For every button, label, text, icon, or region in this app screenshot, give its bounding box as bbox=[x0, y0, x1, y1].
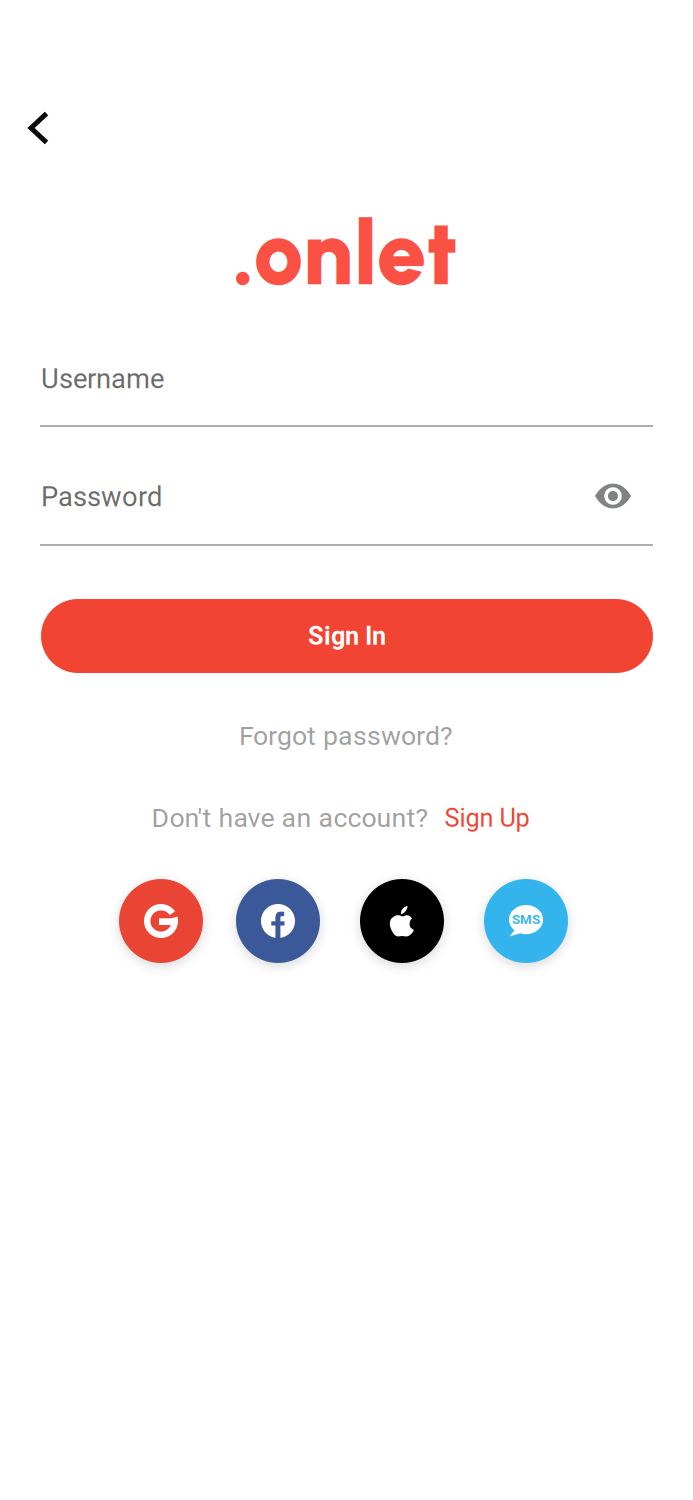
staticText: Don't have an account? bbox=[151, 802, 428, 834]
button[interactable]: Sign Up bbox=[444, 803, 529, 833]
button[interactable]: Sign In bbox=[41, 599, 653, 673]
button[interactable]: Sign in with Facebook bbox=[236, 879, 320, 963]
staticText: Username bbox=[41, 363, 164, 395]
staticText: .onlet bbox=[232, 199, 458, 307]
staticText: Sign Up bbox=[444, 803, 529, 833]
staticText: Password bbox=[41, 481, 162, 513]
button[interactable]: Forgot password? bbox=[196, 716, 496, 756]
button[interactable]: Back bbox=[7, 96, 71, 160]
staticText: SMS bbox=[512, 912, 540, 927]
button[interactable]: Show password bbox=[585, 472, 641, 520]
button[interactable]: Sign in with SMS bbox=[484, 879, 568, 963]
staticText: Forgot password? bbox=[239, 720, 453, 752]
button[interactable]: Sign in with Apple bbox=[360, 879, 444, 963]
staticText: Sign In bbox=[308, 621, 386, 651]
button[interactable]: Sign in with Google bbox=[119, 879, 203, 963]
